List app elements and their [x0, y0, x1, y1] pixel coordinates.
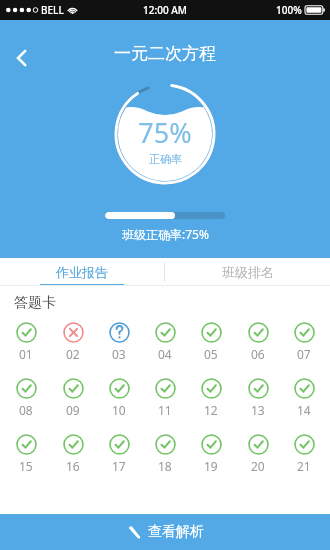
- staticText: 答题卡: [14, 294, 56, 312]
- button[interactable]: Question 17: [99, 432, 139, 476]
- staticText: 21: [297, 458, 311, 474]
- button[interactable]: Question 12: [191, 376, 231, 420]
- staticText: BELL: [41, 3, 64, 17]
- staticText: 正确率: [149, 152, 182, 166]
- button[interactable]: Question 20: [238, 432, 278, 476]
- button[interactable]: Question 18: [145, 432, 185, 476]
- staticText: 100%: [276, 3, 302, 17]
- staticText: 作业报告: [56, 264, 108, 280]
- button[interactable]: Question 7: [284, 320, 324, 364]
- staticText: 10: [112, 402, 126, 418]
- staticText: 班级正确率:75%: [122, 226, 209, 242]
- staticText: 11: [158, 402, 172, 418]
- staticText: 14: [297, 402, 311, 418]
- staticText: 17: [112, 458, 126, 474]
- staticText: 20: [251, 458, 265, 474]
- button[interactable]: Question 21: [284, 432, 324, 476]
- button[interactable]: Question 4: [145, 320, 185, 364]
- staticText: 查看解析: [148, 523, 204, 541]
- staticText: 12:00 AM: [143, 3, 187, 17]
- button[interactable]: 班级排名: [165, 258, 330, 286]
- staticText: 75%: [138, 114, 192, 151]
- button[interactable]: Back: [2, 38, 42, 78]
- staticText: 班级排名: [222, 264, 274, 280]
- button[interactable]: Question 6: [238, 320, 278, 364]
- button[interactable]: Question 9: [53, 376, 93, 420]
- button[interactable]: Question 19: [191, 432, 231, 476]
- button[interactable]: Question 14: [284, 376, 324, 420]
- staticText: 19: [204, 458, 218, 474]
- staticText: 一元二次方程: [114, 43, 216, 64]
- staticText: 09: [66, 402, 80, 418]
- staticText: 05: [204, 346, 218, 362]
- staticText: 16: [66, 458, 80, 474]
- button[interactable]: 查看解析: [0, 514, 330, 550]
- staticText: 03: [112, 346, 126, 362]
- staticText: 06: [251, 346, 265, 362]
- staticText: 01: [19, 346, 33, 362]
- button[interactable]: Question 3: [99, 320, 139, 364]
- staticText: 07: [297, 346, 311, 362]
- staticText: 12: [204, 402, 218, 418]
- button[interactable]: 作业报告: [0, 258, 164, 286]
- button[interactable]: Question 15: [6, 432, 46, 476]
- staticText: 08: [19, 402, 33, 418]
- staticText: 13: [251, 402, 265, 418]
- button[interactable]: Question 5: [191, 320, 231, 364]
- button[interactable]: Question 11: [145, 376, 185, 420]
- staticText: 15: [19, 458, 33, 474]
- staticText: 04: [158, 346, 172, 362]
- staticText: 18: [158, 458, 172, 474]
- button[interactable]: Question 13: [238, 376, 278, 420]
- button[interactable]: Question 2: [53, 320, 93, 364]
- button[interactable]: Question 8: [6, 376, 46, 420]
- staticText: 02: [66, 346, 80, 362]
- button[interactable]: Question 1: [6, 320, 46, 364]
- button[interactable]: Question 16: [53, 432, 93, 476]
- button[interactable]: Question 10: [99, 376, 139, 420]
